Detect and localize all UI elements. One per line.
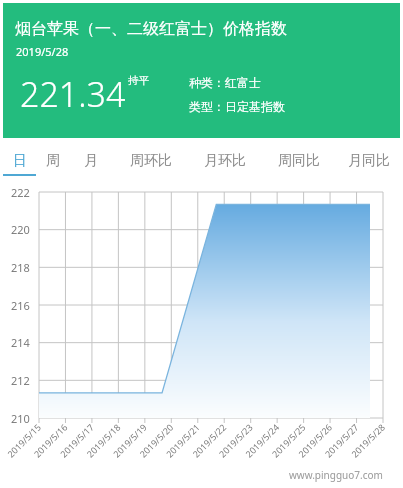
- staticText: 周同比: [278, 152, 320, 170]
- button[interactable]: 日: [3, 138, 36, 183]
- staticText: 月: [84, 152, 98, 170]
- staticText: 烟台苹果（一、二级红富士）价格指数: [15, 19, 287, 39]
- staticText: 类型：日定基指数: [189, 99, 285, 114]
- staticText: 周: [46, 152, 60, 170]
- button[interactable]: 月同比: [335, 138, 403, 183]
- staticText: 221.34: [20, 71, 126, 117]
- staticText: 月环比: [204, 152, 246, 170]
- button[interactable]: 周环比: [113, 138, 188, 183]
- staticText: 月同比: [348, 152, 390, 170]
- staticText: 日: [13, 152, 27, 170]
- staticText: 种类：红富士: [189, 75, 261, 90]
- button[interactable]: 月环比: [188, 138, 262, 183]
- staticText: 2019/5/28: [16, 44, 69, 59]
- button[interactable]: 周同比: [262, 138, 335, 183]
- staticText: 周环比: [130, 152, 172, 170]
- staticText: 持平: [128, 74, 149, 87]
- button[interactable]: 周: [36, 138, 69, 183]
- button[interactable]: 月: [69, 138, 113, 183]
